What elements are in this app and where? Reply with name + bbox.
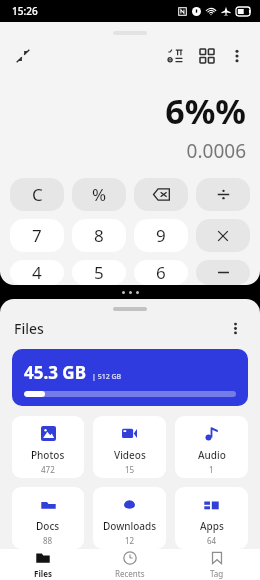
button[interactable]: 45.3 GB xyxy=(12,349,248,406)
staticText: 12 xyxy=(125,535,135,546)
staticText: Files xyxy=(14,319,44,338)
staticText: Docs xyxy=(36,519,60,533)
staticText: Downloads xyxy=(103,519,157,533)
button[interactable]: C xyxy=(10,178,64,211)
staticText: 15 xyxy=(125,464,135,475)
button[interactable]: More options xyxy=(224,317,246,339)
staticText: 5 xyxy=(94,261,104,284)
button[interactable]: 7 xyxy=(10,219,64,252)
staticText: 472 xyxy=(41,464,55,475)
button[interactable]: Scientific mode xyxy=(162,43,188,69)
staticText: Photos xyxy=(31,448,65,462)
button[interactable]: Backspace xyxy=(134,178,188,211)
button[interactable]: Videos xyxy=(93,416,166,478)
staticText: 4 xyxy=(32,261,42,284)
staticText: 6 xyxy=(156,261,166,284)
button[interactable]: 6 xyxy=(134,260,188,285)
button[interactable]: Docs xyxy=(12,487,84,549)
staticText: % xyxy=(92,183,107,206)
staticText: 88 xyxy=(43,535,53,546)
staticText: Tag xyxy=(210,568,224,579)
button[interactable]: Photos xyxy=(12,416,84,478)
staticText: 7 xyxy=(32,224,42,247)
button[interactable]: Tag xyxy=(173,549,260,580)
staticText: 45.3 GB xyxy=(24,361,86,384)
staticText: Apps xyxy=(200,519,224,533)
button[interactable]: Multiply xyxy=(196,219,250,252)
button[interactable]: Recents xyxy=(86,549,173,580)
staticText: 64 xyxy=(207,535,217,546)
button[interactable]: More options xyxy=(224,43,250,69)
staticText: C xyxy=(32,183,43,206)
button[interactable]: Apps xyxy=(175,487,248,549)
button[interactable]: Audio xyxy=(175,416,248,478)
button[interactable]: Collapse xyxy=(10,43,36,69)
staticText: 1 xyxy=(209,464,214,475)
button[interactable]: Files xyxy=(0,549,86,580)
staticText: 6%% xyxy=(165,88,246,134)
staticText: Audio xyxy=(198,448,226,462)
button[interactable]: 9 xyxy=(134,219,188,252)
staticText: Recents xyxy=(115,568,145,579)
staticText: 0.0006 xyxy=(186,138,246,164)
button[interactable]: Minus xyxy=(196,260,250,285)
staticText: 15:26 xyxy=(12,4,38,18)
button[interactable]: Downloads xyxy=(93,487,166,549)
staticText: Videos xyxy=(114,448,146,462)
staticText: 8 xyxy=(94,224,104,247)
staticText: 9 xyxy=(156,224,166,247)
button[interactable]: 5 xyxy=(72,260,126,285)
button[interactable]: Divide xyxy=(196,178,250,211)
staticText: Files xyxy=(34,568,52,579)
button[interactable]: 4 xyxy=(10,260,64,285)
button[interactable]: 8 xyxy=(72,219,126,252)
button[interactable]: Keypad layout xyxy=(194,43,220,69)
staticText: | 512 GB xyxy=(92,372,122,382)
button[interactable]: % xyxy=(72,178,126,211)
